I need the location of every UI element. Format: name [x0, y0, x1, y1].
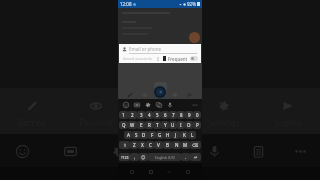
button[interactable]: V [154, 141, 163, 149]
button[interactable]: Emoji [121, 100, 130, 109]
staticText: U [171, 122, 175, 128]
staticText: 6 [164, 112, 167, 118]
button[interactable]: W [128, 121, 137, 129]
button[interactable]: H [164, 131, 172, 139]
button[interactable]: Recents [127, 167, 137, 177]
button[interactable]: 9 [185, 111, 193, 119]
button[interactable]: 8 [177, 111, 185, 119]
button[interactable]: Settings [105, 139, 131, 163]
button[interactable]: T [153, 121, 161, 129]
button[interactable]: Keyboard [132, 97, 188, 127]
button[interactable]: Keyboard [183, 167, 193, 177]
button[interactable]: P [193, 121, 201, 129]
staticText: 1 [122, 112, 125, 118]
button[interactable]: Settings [143, 100, 152, 109]
staticText: . [185, 154, 187, 160]
button[interactable]: O [185, 121, 193, 129]
staticText: 8 [180, 112, 183, 118]
staticText: Y [164, 122, 167, 128]
button[interactable]: B [163, 141, 172, 149]
button[interactable]: Q [119, 121, 128, 129]
staticText: W [130, 122, 135, 128]
button[interactable]: F [148, 131, 156, 139]
button[interactable]: R [145, 121, 153, 129]
staticText: Email or phone [129, 46, 162, 52]
button[interactable]: Translate [153, 139, 179, 163]
staticText: V [157, 142, 160, 148]
button[interactable]: J [172, 131, 180, 139]
button[interactable]: C [146, 141, 154, 149]
staticText: G [158, 132, 162, 138]
button[interactable]: English (US) [148, 153, 181, 161]
staticText: H [166, 132, 170, 138]
button[interactable]: Record [154, 86, 166, 98]
staticText: English (US) [155, 155, 175, 160]
button[interactable]: A [124, 131, 132, 139]
button[interactable]: Personal [68, 97, 124, 127]
staticText: 5 [156, 112, 159, 118]
button[interactable]: K [180, 131, 188, 139]
staticText: Saved accounts [123, 56, 153, 61]
button[interactable]: Voice input [201, 139, 227, 163]
button[interactable]: Settings [196, 97, 252, 127]
button[interactable]: L [188, 131, 196, 139]
button[interactable]: D [140, 131, 148, 139]
button[interactable]: 7 [169, 111, 177, 119]
button[interactable]: Voice input [165, 100, 174, 109]
button[interactable]: Home [146, 167, 156, 177]
staticText: Frequent [168, 56, 188, 62]
button[interactable]: Clipboard [245, 139, 271, 163]
button[interactable]: 3 [137, 111, 145, 119]
staticText: B [166, 142, 169, 148]
staticText: 12:08 [120, 1, 132, 7]
button[interactable]: , [130, 153, 139, 161]
staticText: ⇧ [123, 143, 127, 148]
button[interactable]: E [137, 121, 145, 129]
button[interactable]: Y [161, 121, 169, 129]
button[interactable]: G [156, 131, 164, 139]
button[interactable]: . [181, 153, 190, 161]
button[interactable]: Back [164, 167, 174, 177]
staticText: 3 [140, 112, 143, 118]
button[interactable]: N [172, 141, 181, 149]
button[interactable]: GIF [57, 139, 83, 163]
staticText: K [183, 132, 186, 138]
staticText: , [134, 154, 136, 160]
staticText: X [141, 142, 144, 148]
button[interactable]: ↵ [190, 153, 201, 161]
staticText: I [180, 122, 182, 128]
button[interactable]: S [132, 131, 140, 139]
button[interactable]: X [138, 141, 146, 149]
button[interactable]: More options [287, 139, 313, 163]
button[interactable]: 4 [145, 111, 153, 119]
button[interactable]: 2 [128, 111, 137, 119]
button[interactable]: ⌫ [190, 141, 201, 149]
staticText: 4 [148, 112, 151, 118]
staticText: E [140, 122, 143, 128]
button[interactable]: GIF [132, 100, 141, 109]
button[interactable]: ☺ [139, 153, 148, 161]
button[interactable]: More options [190, 100, 199, 109]
staticText: Q [122, 122, 126, 128]
button[interactable]: Translate [154, 100, 163, 109]
button[interactable]: 0 [193, 111, 201, 119]
button[interactable]: ⇧ [119, 141, 130, 149]
button[interactable]: U [169, 121, 177, 129]
button[interactable]: 5 [153, 111, 161, 119]
button[interactable]: I [177, 121, 185, 129]
button[interactable]: Emoji [9, 139, 35, 163]
staticText: 92% [187, 1, 196, 7]
staticText: J [175, 132, 177, 138]
button[interactable]: ?123 [119, 153, 130, 161]
button[interactable]: Z [130, 141, 138, 149]
button[interactable]: 1 [119, 111, 128, 119]
staticText: T [156, 122, 159, 128]
button[interactable]: 6 [161, 111, 169, 119]
button[interactable]: M [181, 141, 190, 149]
